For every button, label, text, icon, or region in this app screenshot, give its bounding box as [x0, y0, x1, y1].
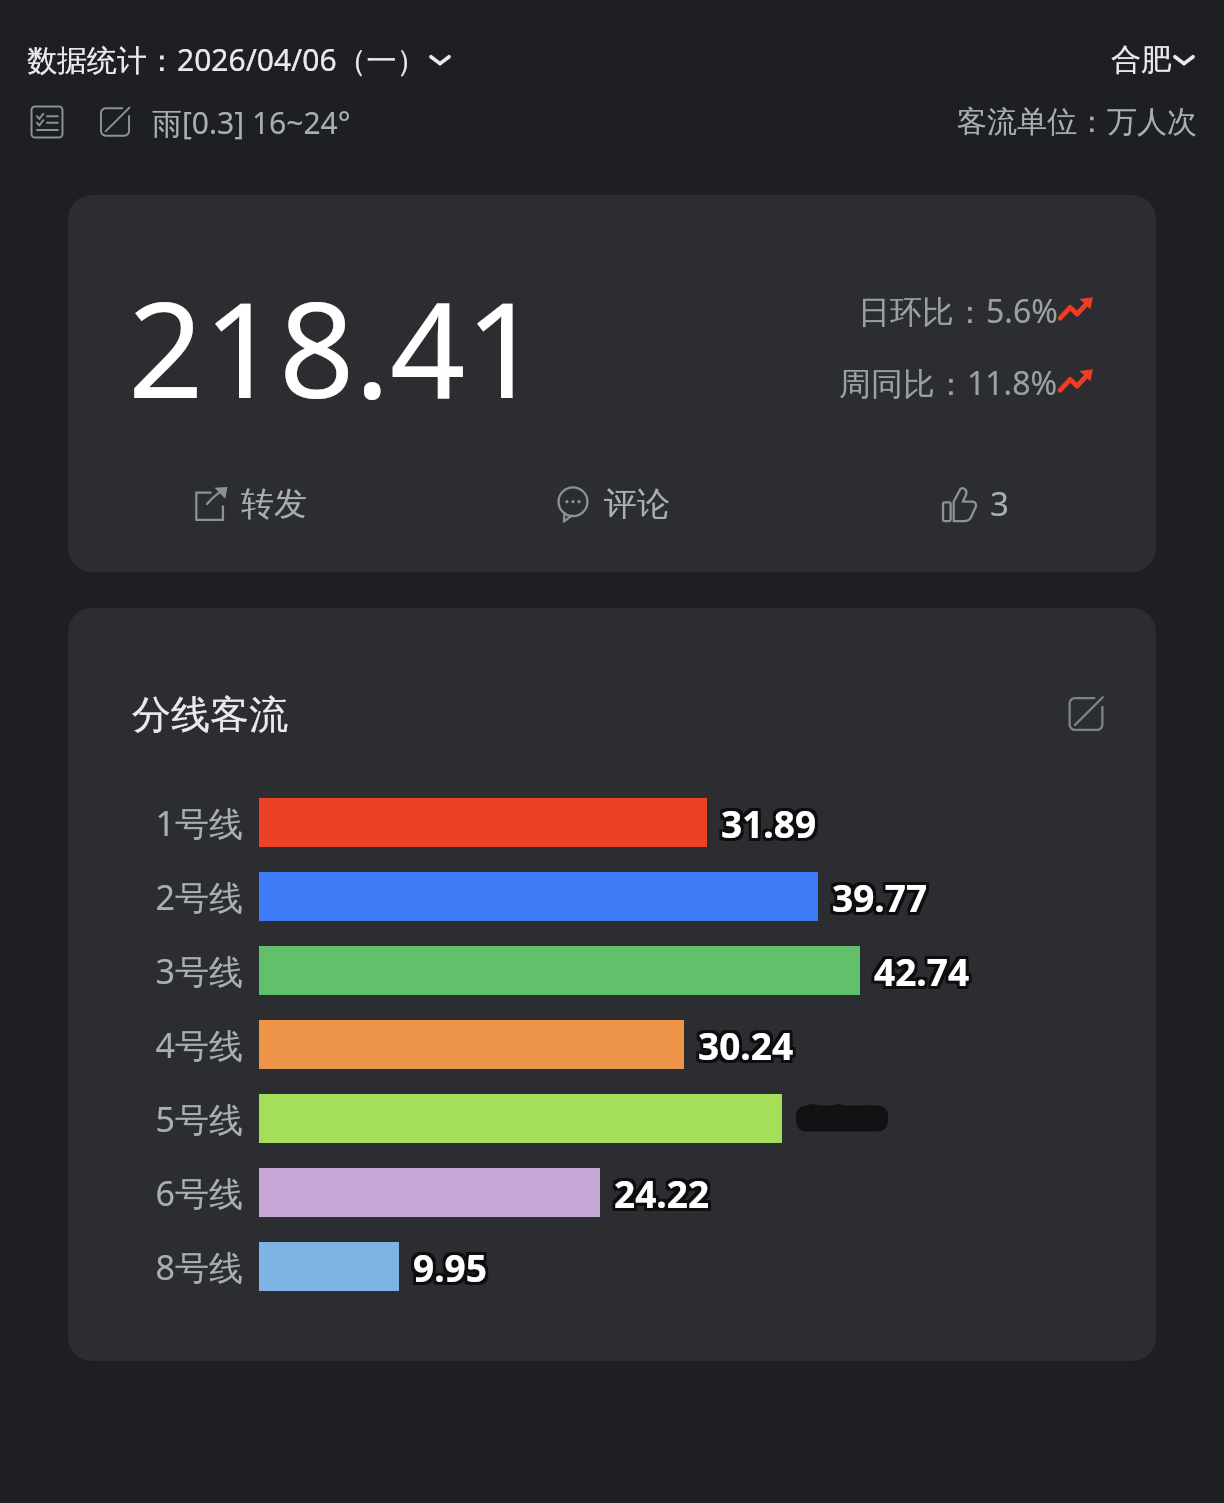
staticText: 9.95 — [416, 1245, 490, 1294]
staticText: 42.74 — [871, 947, 967, 996]
staticText: 24.22 — [613, 1171, 709, 1220]
staticText: 39.77 — [829, 871, 925, 920]
staticText: 39.77 — [829, 875, 925, 924]
staticText: 9.95 — [416, 1243, 490, 1292]
staticText: 24.22 — [617, 1171, 713, 1220]
button[interactable]: 评论 — [430, 473, 793, 535]
staticText: 31.89 — [722, 795, 818, 844]
staticText: 31.89 — [720, 799, 816, 848]
staticText: 42.74 — [871, 945, 967, 994]
staticText: 3 — [990, 481, 1009, 526]
staticText: 9.95 — [410, 1241, 484, 1290]
button[interactable]: Edit chart — [1058, 686, 1114, 742]
staticText: 31.89 — [724, 795, 820, 844]
staticText: 9.95 — [412, 1245, 486, 1294]
staticText: 24.22 — [617, 1165, 713, 1214]
staticText: 24.22 — [615, 1165, 711, 1214]
staticText: 客流单位：万人次 — [957, 103, 1197, 141]
staticText: 转发 — [241, 483, 307, 525]
staticText: 周同比：11.8% — [839, 361, 1058, 405]
staticText: 42.74 — [875, 947, 971, 996]
staticText: 9.95 — [413, 1242, 487, 1291]
button[interactable]: 218.41 — [68, 195, 1156, 572]
staticText: 30.24 — [697, 1017, 793, 1066]
staticText: 30.24 — [697, 1023, 793, 1072]
staticText: 1号线 — [155, 800, 243, 846]
button[interactable]: Edit note — [90, 97, 140, 147]
staticText: 24.22 — [617, 1167, 713, 1216]
staticText: 42.74 — [877, 949, 973, 998]
staticText: 39.77 — [833, 873, 929, 922]
staticText: 42.74 — [875, 945, 971, 994]
staticText: 24.22 — [613, 1169, 709, 1218]
staticText: 42.74 — [873, 947, 969, 996]
staticText: 31.89 — [718, 799, 814, 848]
staticText: 30.24 — [699, 1017, 795, 1066]
staticText: 30.24 — [701, 1021, 797, 1070]
staticText: 9.95 — [412, 1241, 486, 1290]
staticText: 24.22 — [611, 1165, 707, 1214]
staticText: 31.89 — [724, 801, 820, 850]
staticText: 评论 — [604, 483, 670, 525]
staticText: 42.74 — [875, 943, 971, 992]
staticText: 39.77 — [829, 869, 925, 918]
staticText: 9.95 — [412, 1243, 486, 1292]
staticText: 5号线 — [155, 1096, 243, 1142]
staticText: 9.95 — [410, 1239, 484, 1288]
staticText: 24.22 — [611, 1171, 707, 1220]
staticText: 30.24 — [699, 1019, 795, 1068]
staticText: 42.74 — [874, 946, 970, 995]
staticText: 39.77 — [833, 871, 929, 920]
button[interactable]: 转发 — [68, 473, 430, 535]
button[interactable]: 3 — [793, 471, 1156, 536]
staticText: 24.22 — [614, 1168, 710, 1217]
staticText: 9.95 — [414, 1241, 488, 1290]
staticText: 24.22 — [611, 1169, 707, 1218]
staticText: 39.77 — [832, 872, 928, 921]
staticText: 42.74 — [873, 943, 969, 992]
staticText: 30.24 — [695, 1021, 791, 1070]
staticText: 9.95 — [416, 1239, 490, 1288]
staticText: 31.89 — [718, 797, 814, 846]
staticText: 30.24 — [698, 1020, 794, 1069]
staticText: 合肥 — [1111, 41, 1171, 79]
staticText: 9.95 — [412, 1239, 486, 1288]
staticText: 39.77 — [831, 869, 927, 918]
staticText: 42.74 — [873, 945, 969, 994]
staticText: 42.74 — [877, 947, 973, 996]
staticText: 31.89 — [718, 801, 814, 850]
staticText: 42.74 — [877, 943, 973, 992]
staticText: 30.24 — [695, 1019, 791, 1068]
staticText: 42.74 — [877, 945, 973, 994]
staticText: 30.24 — [695, 1017, 791, 1066]
staticText: 31.89 — [724, 799, 820, 848]
button[interactable]: 合肥 — [1111, 36, 1197, 84]
staticText: 雨[0.3] 16~24° — [152, 102, 351, 143]
staticText: 39.77 — [831, 871, 927, 920]
staticText: 数据统计：2026/04/06（一） — [27, 39, 427, 80]
button[interactable]: 数据统计：2026/04/06（一） — [27, 34, 453, 85]
staticText: 31.89 — [721, 798, 817, 847]
staticText: 42.74 — [871, 943, 967, 992]
staticText: 30.24 — [695, 1023, 791, 1072]
staticText: 31.89 — [724, 797, 820, 846]
button[interactable]: Checklist — [22, 97, 72, 147]
staticText: 39.77 — [833, 869, 929, 918]
staticText: 日环比：5.6% — [858, 289, 1058, 333]
staticText: 42.74 — [871, 949, 967, 998]
staticText: 9.95 — [414, 1245, 488, 1294]
staticText: 39.77 — [833, 875, 929, 924]
staticText: 39.77 — [829, 873, 925, 922]
staticText: 9.95 — [414, 1243, 488, 1292]
staticText: 39.77 — [835, 871, 931, 920]
staticText: 31.89 — [722, 799, 818, 848]
staticText: 30.24 — [701, 1017, 797, 1066]
staticText: 42.74 — [873, 949, 969, 998]
staticText: 39.77 — [835, 875, 931, 924]
staticText: 31.89 — [720, 795, 816, 844]
staticText: 3号线 — [155, 948, 243, 994]
staticText: 8号线 — [155, 1244, 243, 1290]
staticText: 30.24 — [699, 1023, 795, 1072]
staticText: 分线客流 — [132, 690, 288, 739]
staticText: 30.24 — [699, 1021, 795, 1070]
